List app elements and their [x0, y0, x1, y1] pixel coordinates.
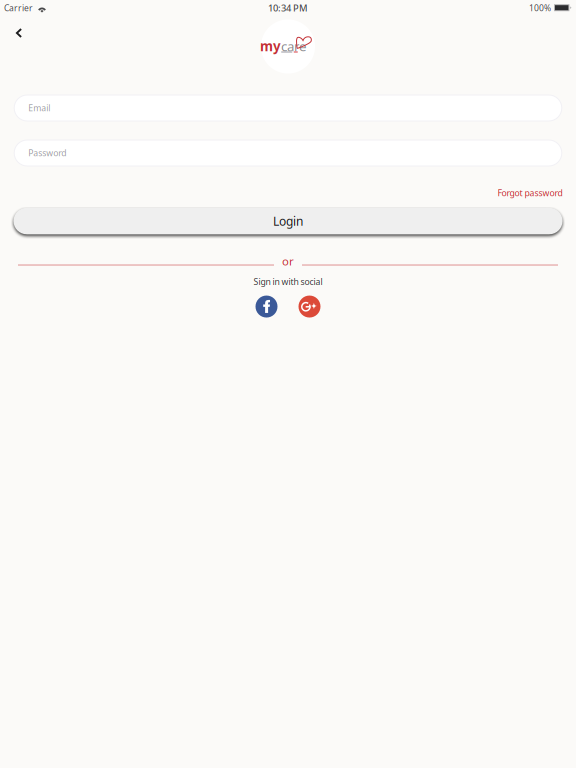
- staticText: Forgot password: [497, 187, 562, 199]
- button[interactable]: Forgot password: [497, 187, 562, 199]
- button[interactable]: Sign in with Google Plus: [298, 295, 320, 317]
- staticText: care: [281, 37, 307, 55]
- staticText: or: [282, 253, 294, 269]
- staticText: my: [260, 37, 281, 55]
- button[interactable]: Login: [13, 208, 562, 234]
- staticText: 10:34 PM: [268, 2, 308, 14]
- staticText: Password: [28, 147, 66, 159]
- staticText: Login: [273, 213, 303, 229]
- staticText: Email: [28, 102, 50, 114]
- staticText: Carrier: [4, 2, 33, 14]
- button[interactable]: Back: [0, 31, 30, 61]
- staticText: 100%: [529, 2, 551, 14]
- staticText: Sign in with social: [253, 276, 322, 287]
- button[interactable]: Sign in with Facebook: [255, 295, 277, 317]
